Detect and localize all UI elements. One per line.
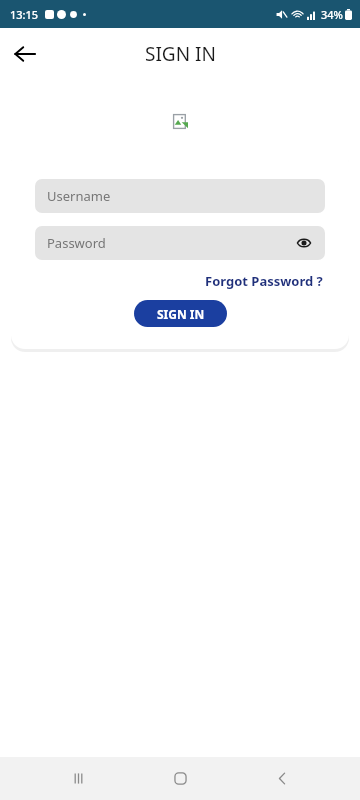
button[interactable]: Show password	[295, 234, 313, 252]
staticText: SIGN IN	[157, 306, 205, 322]
button[interactable]: Recent apps	[54, 757, 102, 800]
staticText: Username	[47, 187, 111, 205]
button[interactable]: Back	[5, 34, 45, 74]
staticText: Password	[47, 234, 106, 252]
button[interactable]: Username	[35, 179, 325, 213]
staticText: 13:15	[10, 7, 39, 22]
staticText: SIGN IN	[145, 41, 216, 67]
button[interactable]: Password	[35, 226, 325, 260]
button[interactable]: Forgot Password ?	[203, 270, 325, 292]
button[interactable]: SIGN IN	[134, 300, 227, 327]
button[interactable]: Home	[156, 757, 204, 800]
staticText: 34%	[321, 7, 343, 22]
button[interactable]: Back	[258, 757, 306, 800]
